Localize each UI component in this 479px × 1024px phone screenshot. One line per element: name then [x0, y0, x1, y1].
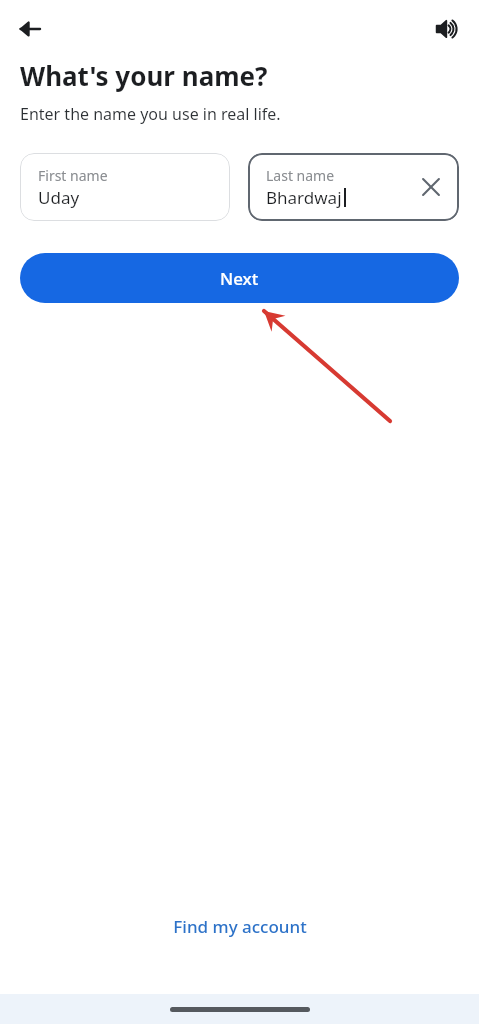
button[interactable]: Find my account	[173, 915, 307, 938]
staticText: Enter the name you use in real life.	[20, 103, 281, 125]
staticText: First name	[38, 166, 108, 185]
staticText: What's your name?	[20, 58, 268, 93]
button[interactable]: Last name	[248, 153, 459, 221]
staticText: Next	[220, 267, 259, 290]
staticText: Bhardwaj	[266, 186, 342, 209]
button[interactable]: Clear text	[413, 169, 449, 205]
button[interactable]: Back	[8, 7, 52, 51]
button[interactable]: Next	[20, 253, 459, 303]
button[interactable]: Volume	[425, 7, 469, 51]
button[interactable]: First name	[20, 153, 230, 221]
staticText: Last name	[266, 166, 335, 185]
staticText: Find my account	[173, 915, 307, 938]
staticText: Uday	[38, 186, 80, 209]
